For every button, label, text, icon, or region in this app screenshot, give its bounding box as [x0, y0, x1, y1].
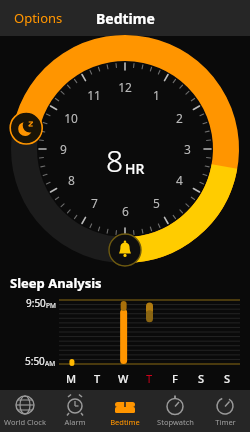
- staticText: PM: [46, 301, 56, 310]
- staticText: Bedtime: [110, 417, 140, 427]
- button[interactable]: World Clock: [0, 390, 50, 432]
- staticText: 11: [87, 87, 101, 103]
- staticText: 3: [184, 141, 191, 157]
- staticText: F: [172, 371, 178, 386]
- staticText: T: [94, 371, 101, 386]
- button[interactable]: Stopwatch: [150, 390, 200, 432]
- staticText: 7: [91, 195, 98, 211]
- staticText: 9: [60, 141, 67, 157]
- button[interactable]: Alarm: [50, 390, 100, 432]
- button[interactable]: Timer: [200, 390, 250, 432]
- button[interactable]: Options: [4, 3, 73, 33]
- staticText: M: [66, 371, 77, 386]
- staticText: 1: [153, 87, 160, 103]
- staticText: 2: [176, 110, 183, 126]
- staticText: HR: [125, 159, 145, 178]
- staticText: Bedtime: [96, 9, 155, 28]
- staticText: 8: [68, 172, 75, 188]
- staticText: S: [198, 371, 205, 386]
- staticText: Stopwatch: [157, 417, 194, 427]
- staticText: W: [118, 371, 129, 386]
- staticText: 12: [118, 79, 132, 95]
- staticText: 5:50: [25, 354, 45, 368]
- staticText: Sleep Analysis: [10, 274, 102, 292]
- staticText: 10: [64, 110, 78, 126]
- staticText: Alarm: [64, 417, 86, 427]
- staticText: 5: [153, 195, 160, 211]
- staticText: 4: [176, 172, 183, 188]
- staticText: AM: [45, 359, 56, 368]
- staticText: Options: [14, 9, 63, 27]
- staticText: World Clock: [4, 417, 46, 427]
- staticText: 9:50: [26, 296, 46, 310]
- staticText: Timer: [215, 417, 236, 427]
- button[interactable]: Bedtime: [100, 390, 150, 432]
- staticText: 8: [106, 140, 124, 181]
- staticText: T: [146, 371, 153, 386]
- staticText: 6: [122, 203, 129, 219]
- staticText: S: [224, 371, 231, 386]
